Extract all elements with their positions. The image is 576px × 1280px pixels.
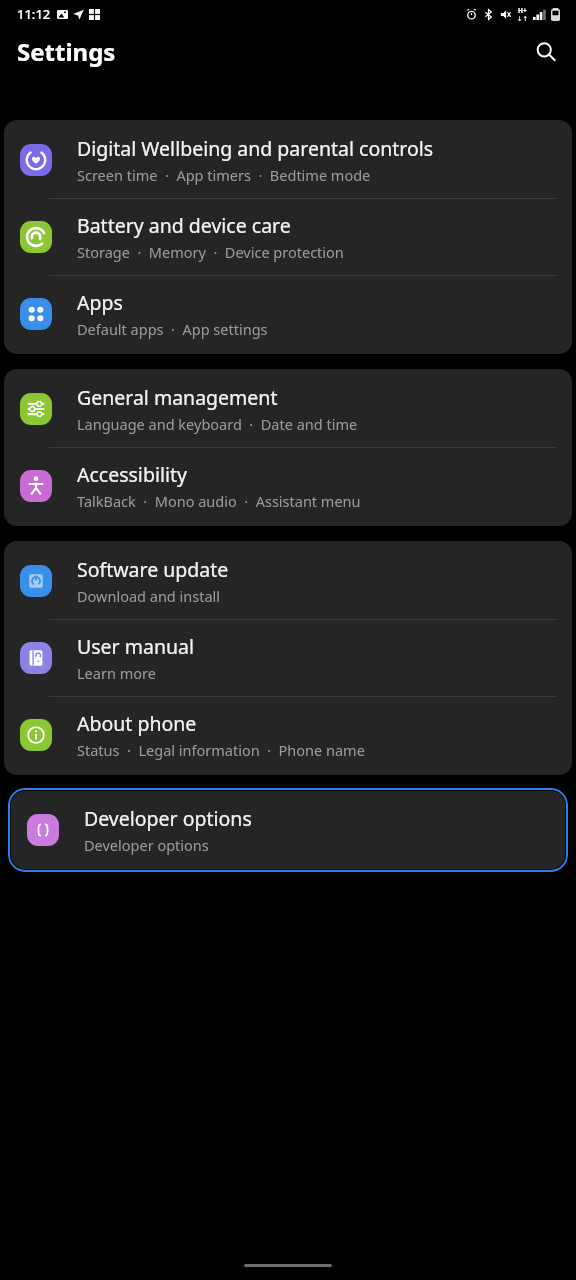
staticText: Apps — [77, 289, 123, 316]
staticText: ↓↑ — [517, 15, 528, 23]
staticText: Status · Legal information · Phone name — [77, 740, 365, 760]
staticText: Software update — [77, 556, 229, 583]
button[interactable]: Apps — [4, 276, 572, 354]
staticText: Digital Wellbeing and parental controls — [77, 135, 434, 162]
staticText: About phone — [77, 710, 197, 737]
staticText: General management — [77, 384, 278, 411]
staticText: H+ — [518, 6, 527, 15]
button[interactable]: Software update — [4, 541, 572, 619]
staticText: User manual — [77, 633, 194, 660]
staticText: Screen time · App timers · Bedtime mode — [77, 165, 371, 185]
button[interactable]: Developer options — [11, 791, 565, 869]
staticText: Developer options — [84, 835, 209, 855]
button[interactable]: User manual — [4, 620, 572, 696]
staticText: 11:12 — [17, 5, 51, 23]
button[interactable]: Developer options — [11, 791, 565, 869]
button[interactable]: Accessibility — [4, 448, 572, 526]
staticText: Settings — [17, 35, 116, 68]
button[interactable]: General management — [4, 369, 572, 447]
staticText: Accessibility — [77, 461, 187, 488]
button[interactable]: Digital Wellbeing and parental controls — [4, 120, 572, 198]
staticText: Language and keyboard · Date and time — [77, 414, 358, 434]
staticText: TalkBack · Mono audio · Assistant menu — [77, 491, 361, 511]
staticText: Battery and device care — [77, 212, 291, 239]
staticText: Default apps · App settings — [77, 319, 268, 339]
button[interactable]: Search — [528, 34, 564, 70]
staticText: Storage · Memory · Device protection — [77, 242, 344, 262]
button[interactable]: About phone — [4, 697, 572, 775]
staticText: Learn more — [77, 663, 156, 683]
button[interactable]: Battery and device care — [4, 199, 572, 275]
staticText: Download and install — [77, 586, 221, 606]
staticText: Developer options — [84, 805, 252, 832]
